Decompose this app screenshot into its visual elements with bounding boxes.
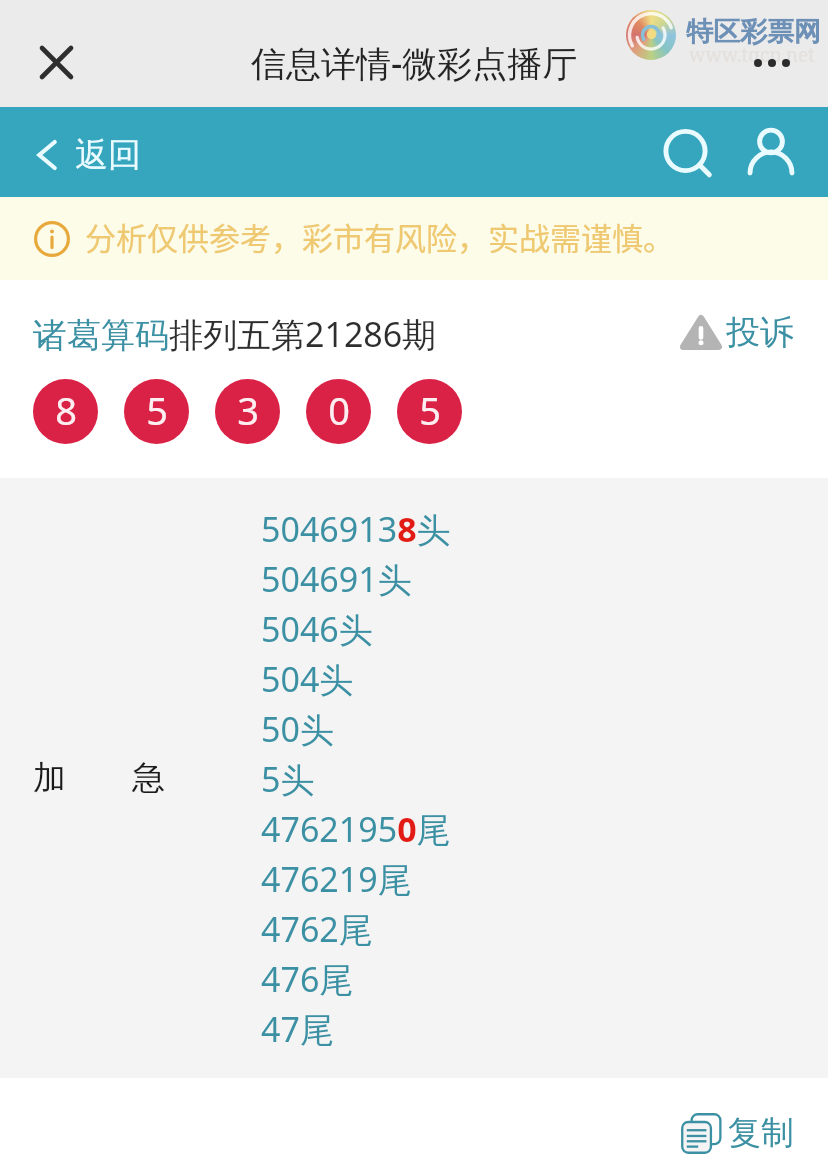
staticText: 47621950尾 [261, 806, 451, 852]
staticText: 4762尾 [261, 906, 373, 952]
button[interactable]: 复制 [673, 1104, 802, 1162]
button[interactable]: Profile [741, 122, 801, 182]
staticText: 返回 [75, 134, 141, 176]
button[interactable]: Search [655, 122, 715, 182]
staticText: 476尾 [261, 956, 354, 1002]
staticText: 504691头 [261, 556, 412, 602]
staticText: 5 [419, 384, 441, 436]
button[interactable]: Close [26, 32, 86, 92]
button[interactable]: 投诉 [672, 303, 802, 362]
button[interactable]: 加 [0, 478, 828, 1078]
staticText: 5头 [261, 756, 315, 802]
staticText: 8 [55, 384, 77, 436]
staticText: 特区彩票网 [686, 15, 821, 49]
staticText: 476219尾 [261, 856, 412, 902]
staticText: 急 [132, 757, 165, 799]
staticText: 5046头 [261, 606, 373, 652]
button[interactable]: More options [744, 49, 800, 77]
staticText: 投诉 [726, 311, 794, 354]
staticText: 3 [237, 384, 259, 436]
staticText: 47尾 [261, 1006, 334, 1052]
button[interactable]: 返回 [26, 120, 153, 190]
staticText: 分析仅供参考，彩市有风险，实战需谨慎。 [85, 214, 674, 259]
staticText: 50头 [261, 706, 334, 752]
staticText: 504头 [261, 656, 354, 702]
staticText: www.tqcp.net [689, 42, 815, 68]
staticText: 5 [146, 384, 168, 436]
staticText: 50469138头 [261, 506, 451, 552]
staticText: 复制 [728, 1112, 794, 1154]
staticText: 诸葛算码排列五第21286期 [33, 311, 437, 357]
staticText: 0 [328, 384, 350, 436]
staticText: 信息详情-微彩点播厅 [251, 39, 578, 87]
staticText: 加 [33, 757, 66, 799]
